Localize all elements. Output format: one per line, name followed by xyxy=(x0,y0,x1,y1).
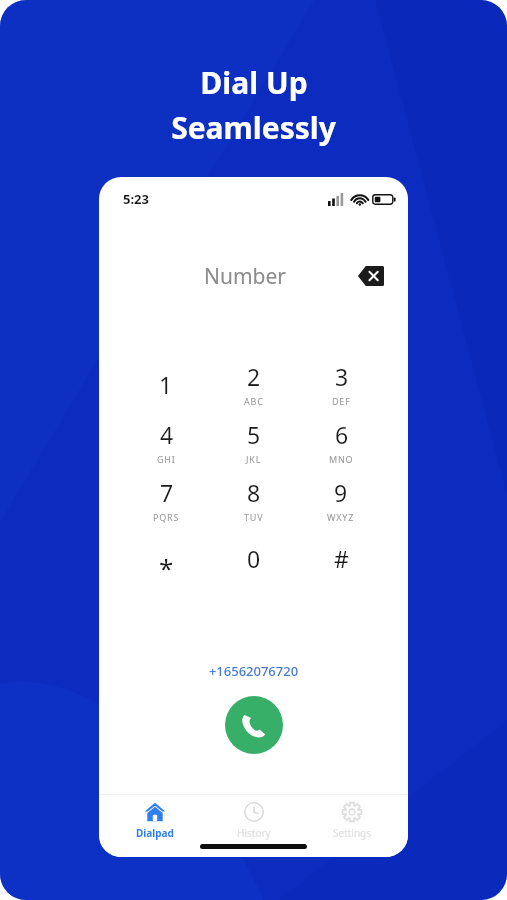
staticText: 1 xyxy=(159,369,173,400)
staticText: 2 xyxy=(247,361,261,392)
staticText: DEF xyxy=(332,395,351,407)
staticText: 8 xyxy=(247,477,261,508)
button[interactable]: 1 xyxy=(129,355,203,413)
button[interactable]: 0 xyxy=(217,529,291,587)
staticText: +16562076720 xyxy=(99,662,408,680)
button[interactable]: History xyxy=(212,797,296,844)
staticText: 0 xyxy=(247,543,261,574)
staticText: 3 xyxy=(335,361,349,392)
button[interactable]: 2 xyxy=(217,355,291,413)
button[interactable]: Settings xyxy=(310,797,394,844)
button[interactable]: # xyxy=(304,529,378,587)
staticText: 4 xyxy=(160,419,174,450)
button[interactable]: Dialpad xyxy=(113,797,197,844)
button[interactable]: 9 xyxy=(304,471,378,529)
button[interactable]: 7 xyxy=(129,471,203,529)
staticText: Number xyxy=(204,262,287,291)
button[interactable]: 8 xyxy=(217,471,291,529)
button[interactable]: 3 xyxy=(304,355,378,413)
staticText: Settings xyxy=(333,826,372,840)
staticText: PQRS xyxy=(153,511,180,523)
staticText: JKL xyxy=(246,453,262,465)
staticText: WXYZ xyxy=(327,511,355,523)
staticText: Dialpad xyxy=(136,826,174,840)
button[interactable]: Call xyxy=(225,696,283,754)
staticText: 5:23 xyxy=(123,190,149,208)
staticText: Dial Up xyxy=(200,62,308,103)
staticText: History xyxy=(237,826,271,840)
staticText: MNO xyxy=(329,453,354,465)
staticText: 9 xyxy=(334,477,348,508)
button[interactable]: * xyxy=(129,529,203,587)
staticText: 7 xyxy=(160,477,174,508)
staticText: GHI xyxy=(157,453,176,465)
button[interactable]: Backspace xyxy=(354,259,388,293)
staticText: 5 xyxy=(247,419,261,450)
button[interactable]: 4 xyxy=(129,413,203,471)
button[interactable]: 5 xyxy=(217,413,291,471)
staticText: ABC xyxy=(244,395,264,407)
staticText: * xyxy=(159,550,174,576)
staticText: 6 xyxy=(335,419,349,450)
staticText: # xyxy=(334,543,349,574)
button[interactable]: 6 xyxy=(304,413,378,471)
staticText: TUV xyxy=(244,511,264,523)
staticText: Seamlessly xyxy=(171,107,336,148)
